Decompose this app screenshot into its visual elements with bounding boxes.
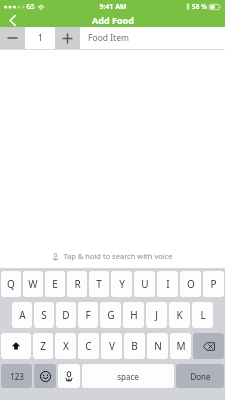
staticText: U xyxy=(141,277,149,291)
staticText: A xyxy=(19,308,26,322)
staticText: D xyxy=(62,308,70,322)
button[interactable]: Q xyxy=(1,271,21,297)
button[interactable]: Decrease quantity xyxy=(0,27,25,49)
button[interactable]: I xyxy=(157,271,178,297)
staticText: C xyxy=(85,339,92,353)
button[interactable]: R xyxy=(67,271,87,297)
button[interactable]: W xyxy=(23,271,43,297)
button[interactable]: M xyxy=(170,333,191,359)
staticText: Y xyxy=(119,277,125,291)
button[interactable]: J xyxy=(146,302,167,328)
button[interactable]: D xyxy=(56,302,76,328)
button[interactable]: Food Item xyxy=(80,27,225,49)
staticText: 1 xyxy=(38,32,43,44)
button[interactable]: E xyxy=(45,271,65,297)
staticText: X xyxy=(63,339,69,353)
button[interactable]: A xyxy=(12,302,32,328)
button[interactable]: Shift xyxy=(1,333,31,359)
staticText: Q xyxy=(7,277,15,291)
staticText: Done xyxy=(190,371,211,382)
button[interactable]: H xyxy=(123,302,144,328)
button[interactable]: X xyxy=(55,333,76,359)
button[interactable]: space xyxy=(82,364,174,388)
button[interactable]: Z xyxy=(33,333,53,359)
button[interactable]: Y xyxy=(111,271,132,297)
staticText: M xyxy=(176,339,186,353)
button[interactable]: C xyxy=(78,333,99,359)
button[interactable]: S xyxy=(34,302,54,328)
button[interactable]: N xyxy=(147,333,168,359)
button[interactable]: U xyxy=(134,271,155,297)
staticText: R xyxy=(74,277,81,291)
staticText: E xyxy=(52,277,58,291)
staticText: T xyxy=(96,277,102,291)
staticText: O xyxy=(187,277,195,291)
button[interactable]: Voice input xyxy=(58,364,80,388)
staticText: 123 xyxy=(10,371,24,382)
staticText: H xyxy=(130,308,138,322)
button[interactable]: B xyxy=(124,333,145,359)
staticText: Food Item xyxy=(88,32,129,44)
button[interactable]: Backspace xyxy=(193,333,224,359)
button[interactable]: O xyxy=(180,271,201,297)
button[interactable]: Increase quantity xyxy=(55,27,80,49)
button[interactable]: Done xyxy=(176,364,224,388)
staticText: G xyxy=(107,308,115,322)
button[interactable]: 123 xyxy=(1,364,32,388)
staticText: K xyxy=(176,308,183,322)
staticText: N xyxy=(154,339,162,353)
button[interactable]: F xyxy=(78,302,98,328)
staticText: space xyxy=(117,371,139,382)
button[interactable]: T xyxy=(89,271,109,297)
staticText: P xyxy=(210,277,217,291)
staticText: I xyxy=(166,277,170,291)
button[interactable]: K xyxy=(169,302,190,328)
button[interactable]: Back xyxy=(0,13,24,27)
button[interactable]: V xyxy=(101,333,122,359)
staticText: GS xyxy=(26,2,35,11)
button[interactable]: P xyxy=(203,271,224,297)
staticText: S xyxy=(41,308,47,322)
button[interactable]: Emoji xyxy=(34,364,56,388)
staticText: Tap & hold to search with voice xyxy=(63,251,173,261)
staticText: B xyxy=(131,339,138,353)
staticText: J xyxy=(155,308,158,322)
staticText: 9:41 AM xyxy=(99,2,127,12)
button[interactable]: L xyxy=(192,302,213,328)
staticText: 58 % xyxy=(192,2,207,11)
staticText: Add Food xyxy=(92,14,134,26)
staticText: W xyxy=(28,277,38,291)
button[interactable]: G xyxy=(100,302,121,328)
staticText: F xyxy=(85,308,91,322)
staticText: Z xyxy=(40,339,46,353)
staticText: V xyxy=(109,339,115,353)
staticText: L xyxy=(200,308,206,322)
